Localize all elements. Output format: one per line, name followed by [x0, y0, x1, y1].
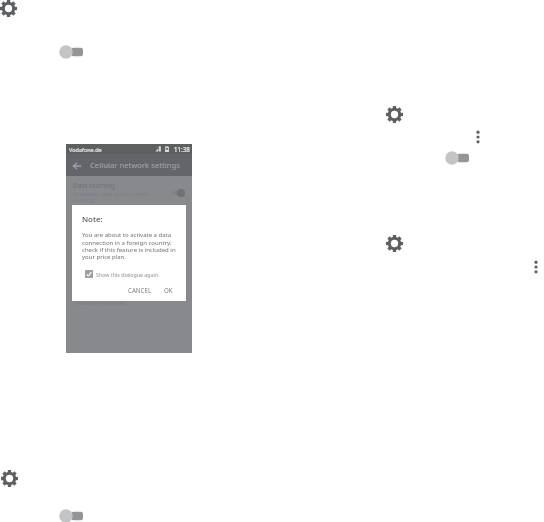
button[interactable]: Toggle [59, 45, 83, 59]
button[interactable]: CANCEL [128, 286, 152, 294]
button[interactable]: Settings [0, 0, 17, 17]
staticText: 11:38 [174, 145, 190, 153]
button[interactable]: Back [71, 160, 82, 171]
button[interactable]: Toggle [445, 151, 469, 165]
button[interactable]: Settings [1, 470, 18, 487]
staticText: Note: [82, 214, 103, 225]
button[interactable]: More options [534, 261, 538, 273]
button[interactable]: OK [164, 286, 173, 294]
staticText: Data roaming [73, 181, 115, 190]
button[interactable]: Settings [386, 235, 403, 252]
staticText: You are about to activate a data connect… [82, 231, 176, 260]
button[interactable]: More options [476, 131, 480, 143]
button[interactable]: Settings [386, 106, 403, 123]
button[interactable]: Show this dialogue again. [85, 270, 160, 278]
staticText: Cellular network settings [90, 160, 180, 170]
staticText: Vodafone.de [69, 146, 102, 153]
button[interactable]: Toggle [59, 509, 83, 522]
staticText: Show this dialogue again. [96, 271, 160, 278]
staticText: Vodafone-Services [75, 299, 126, 307]
button[interactable]: Data roaming toggle [171, 189, 185, 197]
